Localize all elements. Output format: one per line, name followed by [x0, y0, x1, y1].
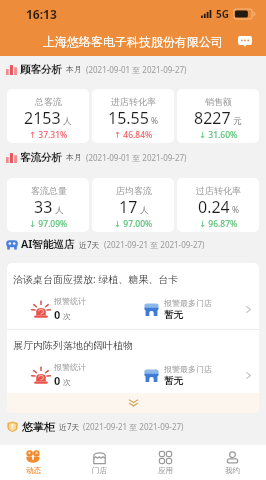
button[interactable]: 我约	[199, 445, 266, 480]
staticText: %	[232, 204, 240, 216]
staticText: 总客流	[35, 96, 62, 107]
staticText: AI智能巡店	[21, 237, 75, 251]
staticText: 洽谈桌台面应摆放: 绿植、糖果、台卡	[13, 272, 179, 286]
staticText: 展厅内陈列落地的阔叶植物	[13, 339, 133, 352]
staticText: 近7天	[59, 421, 80, 432]
staticText: 0	[54, 307, 61, 322]
staticText: 次	[63, 377, 71, 387]
staticText: 应用	[158, 466, 173, 475]
button[interactable]: 展开更多	[7, 393, 259, 413]
staticText: 0.24	[198, 196, 230, 218]
staticText: 报警最多门店	[164, 298, 212, 308]
button[interactable]: 销售额	[177, 89, 259, 143]
button[interactable]: 洽谈桌台面应摆放: 绿植、糖果、台卡	[7, 263, 259, 329]
staticText: 报警最多门店	[164, 364, 212, 374]
staticText: 17	[119, 196, 138, 218]
staticText: 暂无	[164, 309, 183, 321]
staticText: 上海悠络客电子科技股份有限公司	[43, 34, 223, 49]
staticText: 本月	[66, 64, 82, 74]
button[interactable]: 总客流	[7, 89, 89, 143]
staticText: 0	[54, 373, 61, 388]
staticText: 报警统计	[54, 296, 86, 306]
staticText: ↓ 31.60%	[199, 129, 238, 141]
staticText: 我约	[225, 466, 240, 475]
button[interactable]: 应用	[132, 445, 199, 480]
staticText: 客流分析	[20, 151, 62, 164]
staticText: 进店转化率	[111, 96, 156, 107]
staticText: 人	[140, 205, 149, 216]
staticText: ↓ 97.09%	[29, 218, 68, 230]
staticText: 门店	[92, 466, 107, 475]
staticText: 本月	[66, 152, 82, 162]
staticText: 次	[63, 311, 71, 321]
button[interactable]: 店均客流	[92, 178, 174, 232]
staticText: ↓ 97.00%	[114, 218, 153, 230]
staticText: 销售额	[205, 96, 232, 107]
staticText: 近7天	[79, 239, 100, 250]
staticText: (2021-09-21 至 2021-09-27)	[104, 239, 205, 250]
staticText: 人	[55, 205, 64, 216]
staticText: 8227	[194, 107, 231, 129]
staticText: (2021-09-01 至 2021-09-27)	[86, 64, 187, 75]
staticText: ↓ 96.87%	[199, 218, 238, 230]
button[interactable]: 进店转化率	[92, 89, 174, 143]
button[interactable]: 门店	[66, 445, 132, 480]
staticText: 5G	[216, 7, 229, 21]
staticText: 动态	[26, 466, 41, 475]
button[interactable]: 消息	[236, 32, 254, 50]
staticText: 暂无	[164, 375, 183, 387]
staticText: ↑ 46.84%	[114, 129, 153, 141]
staticText: 店均客流	[116, 185, 152, 196]
button[interactable]: 展厅内陈列落地的阔叶植物	[7, 330, 259, 393]
staticText: 15.55	[108, 107, 149, 129]
button[interactable]: 过店转化率	[177, 178, 259, 232]
staticText: ↑ 37.31%	[29, 129, 68, 141]
button[interactable]: 客流总量	[7, 178, 89, 232]
button[interactable]: 动态	[0, 445, 66, 480]
staticText: 2153	[24, 107, 61, 129]
staticText: 人	[63, 116, 72, 127]
staticText: 元	[233, 116, 242, 127]
staticText: 顾客分析	[20, 63, 62, 76]
staticText: 16:13	[26, 6, 57, 22]
staticText: 过店转化率	[196, 185, 241, 196]
staticText: %	[151, 115, 159, 127]
staticText: (2021-09-01 至 2021-09-27)	[86, 152, 187, 163]
staticText: 客流总量	[31, 185, 67, 196]
staticText: 33	[34, 196, 53, 218]
staticText: (2021-09-21 至 2021-09-27)	[83, 421, 184, 432]
staticText: 悠掌柜	[22, 420, 55, 434]
staticText: 报警统计	[54, 362, 86, 372]
